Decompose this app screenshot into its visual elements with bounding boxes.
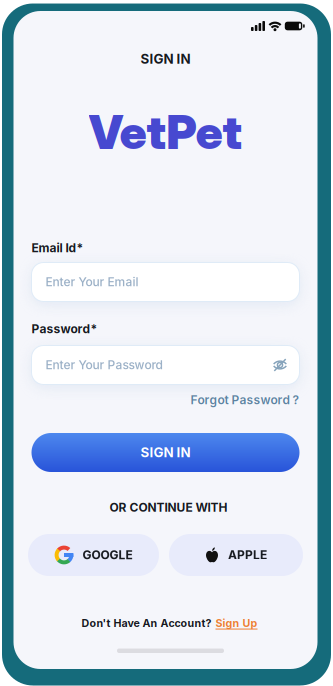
staticText: Don't Have An Account? <box>81 617 211 629</box>
button[interactable]: Enter Your Password <box>31 345 299 384</box>
staticText: Email Id* <box>31 241 83 255</box>
staticText: VetPet <box>88 104 242 160</box>
staticText: Password* <box>31 322 97 336</box>
button[interactable]: SIGN IN <box>31 433 299 472</box>
staticText: SIGN IN <box>140 445 190 460</box>
staticText: Sign Up <box>215 617 257 629</box>
button[interactable]: GOOGLE <box>28 534 159 576</box>
button[interactable]: APPLE <box>169 534 303 576</box>
staticText: GOOGLE <box>82 548 132 562</box>
staticText: OR CONTINUE WITH <box>109 500 227 515</box>
button[interactable] <box>270 355 289 374</box>
staticText: Enter Your Email <box>45 275 138 289</box>
button[interactable]: Forgot Password ? <box>190 393 299 407</box>
staticText: SIGN IN <box>140 51 190 67</box>
staticText: Forgot Password ? <box>190 393 299 407</box>
staticText: Enter Your Password <box>45 358 162 372</box>
staticText: APPLE <box>228 548 267 562</box>
button[interactable]: Don't Have An Account? <box>77 616 253 630</box>
button[interactable]: Enter Your Email <box>31 262 299 301</box>
